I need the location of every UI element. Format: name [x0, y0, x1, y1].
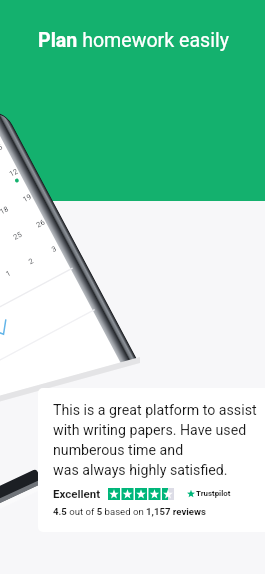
staticText: This is a great platform to assist with …	[53, 402, 257, 478]
button[interactable]: This is a great platform to assist with …	[38, 388, 265, 532]
staticText: Excellent	[53, 487, 101, 500]
staticText: Plan homework easily	[38, 29, 229, 52]
staticText: Trustpilot	[196, 489, 231, 498]
staticText: 4.5 out of 5 based on 1,157 reviews	[53, 506, 206, 517]
